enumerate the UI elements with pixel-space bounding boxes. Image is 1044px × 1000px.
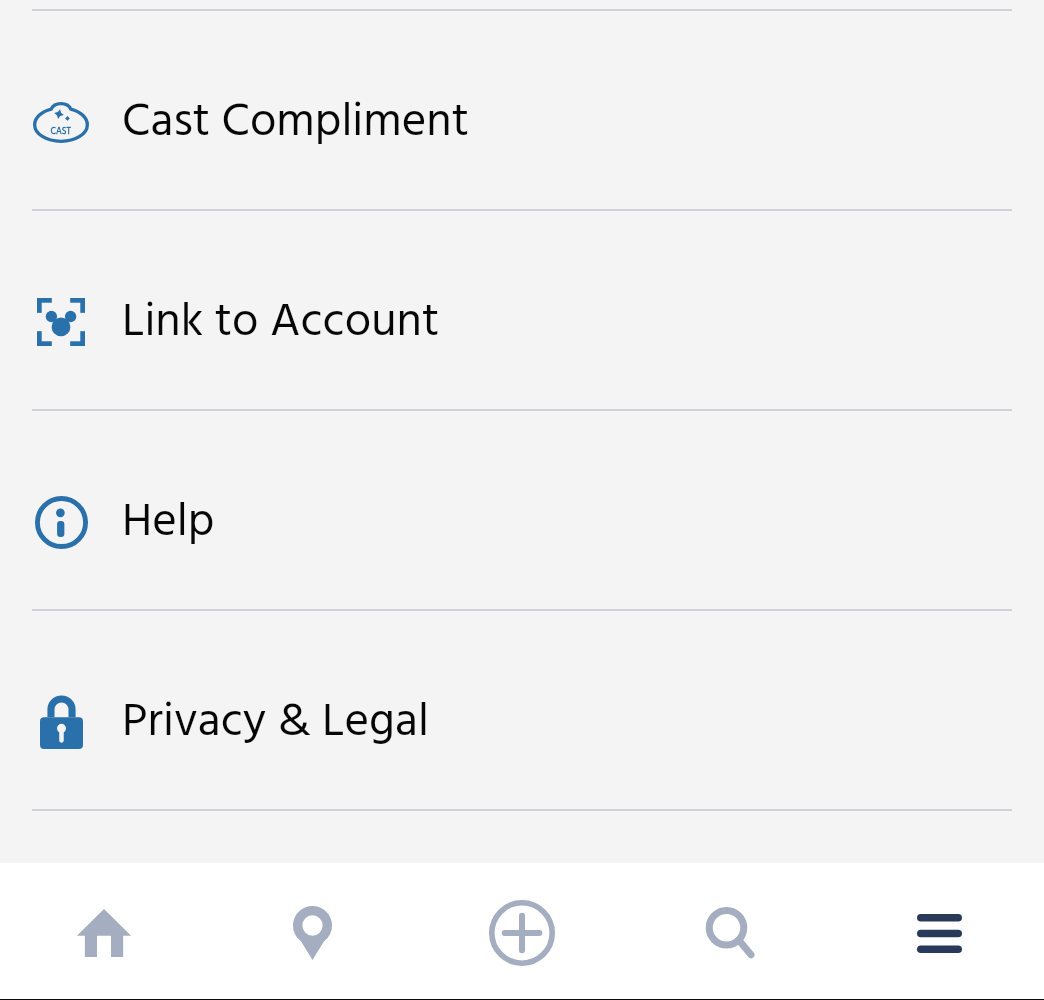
button[interactable]: Create (417, 863, 626, 999)
button[interactable]: Home (0, 863, 208, 999)
button[interactable]: More (835, 863, 1044, 999)
button[interactable]: Help (0, 411, 1044, 609)
button[interactable]: Map (208, 863, 417, 999)
button[interactable]: Link to Account (0, 211, 1044, 409)
staticText: Help (122, 485, 215, 560)
staticText: Privacy & Legal (122, 685, 429, 760)
staticText: Cast Compliment (122, 85, 470, 160)
button[interactable]: Cast Compliment (0, 11, 1044, 209)
staticText: Link to Account (122, 285, 440, 360)
button[interactable]: Privacy & Legal (0, 611, 1044, 809)
button[interactable]: Search (626, 863, 835, 999)
